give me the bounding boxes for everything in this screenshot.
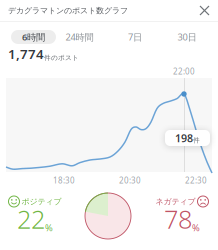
staticText: 1,774 bbox=[8, 45, 44, 63]
staticText: 22:00 bbox=[173, 66, 195, 77]
staticText: 件 bbox=[193, 136, 200, 144]
staticText: 78 bbox=[164, 202, 192, 236]
staticText: 20:30 bbox=[119, 175, 141, 186]
staticText: 22:30 bbox=[185, 175, 207, 186]
staticText: 24時間 bbox=[65, 31, 93, 43]
staticText: % bbox=[45, 221, 53, 234]
staticText: 22 bbox=[17, 202, 45, 236]
staticText: 198 bbox=[175, 131, 193, 145]
staticText: 30日 bbox=[177, 31, 196, 43]
button[interactable]: 30日 bbox=[167, 30, 207, 44]
staticText: 件のポスト bbox=[44, 54, 79, 62]
staticText: % bbox=[192, 221, 200, 234]
button[interactable]: 24時間 bbox=[56, 30, 103, 44]
button[interactable]: 閉じる bbox=[196, 2, 213, 19]
staticText: 7日 bbox=[128, 31, 142, 43]
staticText: 6時間 bbox=[22, 31, 45, 43]
staticText: ネガティブ bbox=[155, 197, 195, 206]
staticText: ポジティブ bbox=[21, 197, 61, 206]
staticText: デカグラマトンのポスト数グラフ bbox=[8, 6, 128, 15]
button[interactable]: 7日 bbox=[115, 30, 155, 44]
button[interactable]: 6時間 bbox=[11, 30, 56, 44]
staticText: 18:30 bbox=[53, 175, 75, 186]
